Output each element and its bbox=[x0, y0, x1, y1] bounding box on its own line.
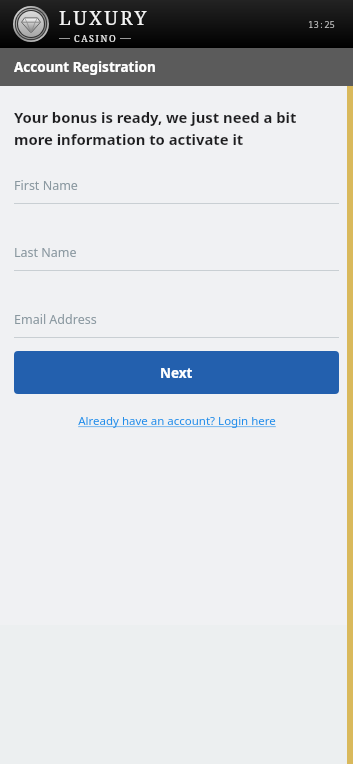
staticText: Already have an account? Login here bbox=[78, 413, 276, 429]
staticText: Email Address bbox=[14, 311, 97, 328]
staticText: Account Registration bbox=[14, 58, 156, 76]
staticText: Your bonus is ready, we just need a bit … bbox=[14, 107, 339, 150]
staticText: 13:25 bbox=[308, 18, 336, 30]
staticText: Last Name bbox=[14, 244, 77, 261]
staticText: Next bbox=[160, 364, 193, 382]
staticText: CASINO bbox=[74, 32, 118, 44]
button[interactable]: Next bbox=[14, 351, 339, 394]
button[interactable]: Already have an account? Login here bbox=[14, 413, 339, 429]
staticText: First Name bbox=[14, 177, 78, 194]
staticText: LUXURY bbox=[59, 5, 149, 31]
